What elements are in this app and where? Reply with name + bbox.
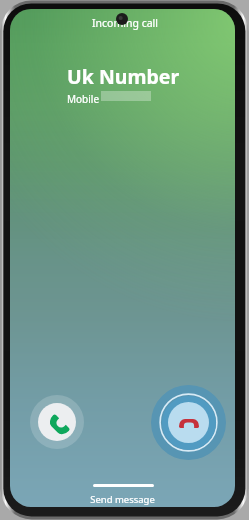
staticText: Uk Number <box>67 63 180 90</box>
button[interactable]: Answer call <box>30 395 84 449</box>
button[interactable]: Decline call <box>151 385 226 460</box>
button[interactable]: Send message <box>90 493 155 506</box>
staticText: Incoming call <box>92 16 158 30</box>
staticText: Mobile <box>67 92 100 106</box>
